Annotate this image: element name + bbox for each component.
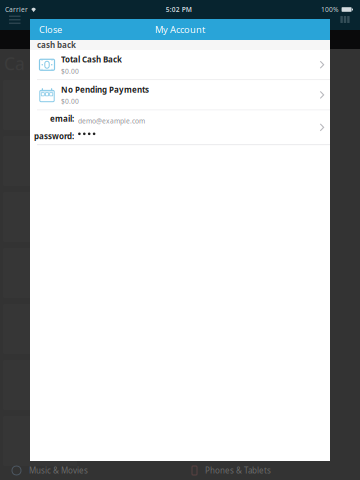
staticText: Phones & Tablets: [205, 465, 271, 476]
staticText: cash back: [37, 40, 76, 50]
staticText: password:: [34, 131, 74, 141]
button[interactable]: No Pending Payments: [30, 80, 330, 110]
staticText: 100%: [321, 5, 339, 14]
staticText: Close: [39, 23, 62, 36]
button[interactable]: Total Cash Back: [30, 50, 330, 79]
staticText: $0.00: [61, 67, 79, 75]
staticText: demo@example.com: [78, 116, 145, 125]
staticText: email:: [50, 113, 74, 124]
staticText: $0.00: [61, 97, 79, 106]
staticText: My Account: [155, 23, 205, 36]
staticText: Music & Movies: [29, 465, 88, 476]
staticText: Total Cash Back: [61, 54, 122, 65]
button[interactable]: email:: [30, 110, 330, 144]
staticText: No Pending Payments: [61, 84, 149, 95]
staticText: 5:02 PM: [166, 5, 192, 14]
button[interactable]: Close: [30, 19, 75, 40]
staticText: Carrier: [5, 5, 28, 14]
